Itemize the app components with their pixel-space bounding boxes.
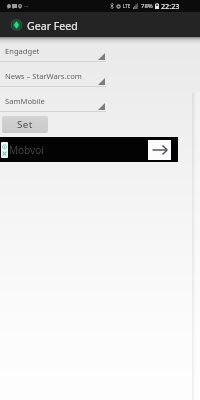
button[interactable]: Open ad: [148, 140, 171, 160]
button[interactable]: Engadget: [0, 37, 106, 62]
staticText: 22:23: [161, 1, 180, 11]
staticText: LTE: [123, 3, 131, 9]
staticText: Mobvoi: [9, 143, 44, 157]
staticText: News – StarWars.com: [5, 71, 82, 81]
staticText: Engadget: [5, 46, 40, 56]
button[interactable]: Ad info: [1, 142, 8, 158]
staticText: 78%: [141, 2, 153, 10]
button[interactable]: Set: [2, 116, 48, 133]
button[interactable]: SamMobile: [0, 87, 106, 112]
staticText: SamMobile: [5, 96, 45, 106]
staticText: Set: [17, 118, 33, 131]
button[interactable]: News – StarWars.com: [0, 62, 106, 87]
staticText: •••: [24, 4, 29, 9]
staticText: Gear Feed: [27, 19, 78, 33]
